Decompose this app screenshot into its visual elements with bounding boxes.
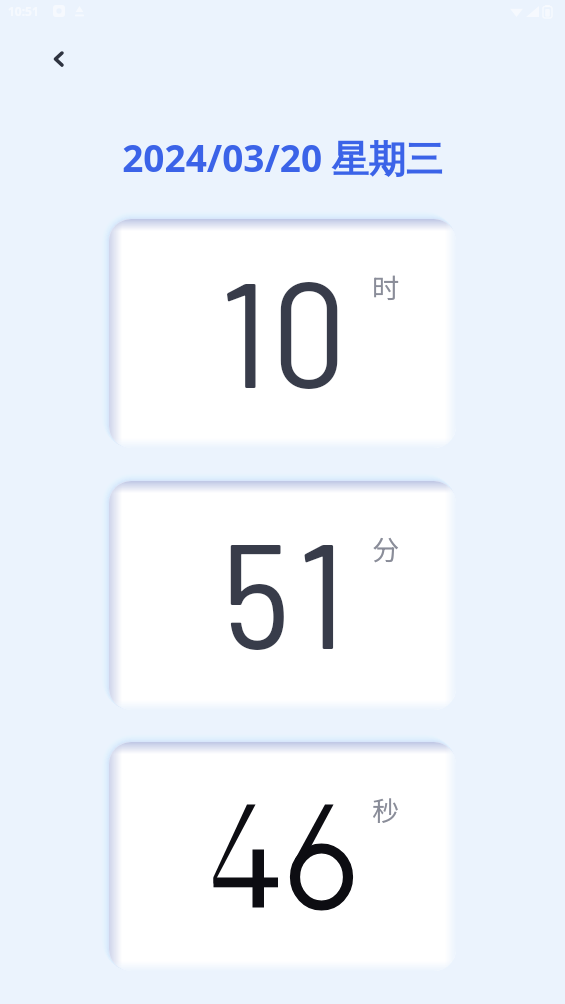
staticText: 分 [372,529,399,568]
staticText: 时 [372,267,399,306]
staticText: 51 [222,501,358,679]
staticText: 10:51 [8,3,39,19]
button[interactable]: Back [36,35,80,79]
staticText: 10 [222,240,352,418]
staticText: 秒 [372,790,399,829]
button[interactable]: 秒 [109,742,456,971]
staticText: 2024/03/20 星期三 [0,132,565,183]
button[interactable]: 10 [109,219,456,448]
button[interactable]: 51 [109,481,456,710]
